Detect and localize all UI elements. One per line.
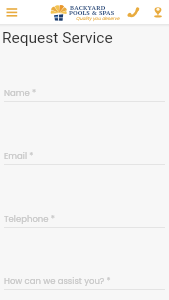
- button[interactable]: Email *: [0, 150, 169, 166]
- staticText: Quality you deserve: [76, 15, 120, 21]
- button[interactable]: Location: [147, 0, 168, 24]
- staticText: POOLS & SPAS: [69, 9, 115, 17]
- button[interactable]: Menu: [0, 0, 24, 24]
- button[interactable]: Name *: [0, 87, 169, 103]
- staticText: Name *: [4, 87, 37, 99]
- staticText: BACKYARD: [70, 4, 106, 12]
- button[interactable]: How can we assist you? *: [0, 275, 169, 291]
- button[interactable]: Call: [123, 0, 144, 24]
- staticText: Email *: [4, 150, 34, 162]
- staticText: How can we assist you? *: [4, 275, 111, 287]
- button[interactable]: Telephone *: [0, 213, 169, 229]
- staticText: Telephone *: [4, 213, 55, 225]
- staticText: Request Service: [2, 29, 113, 47]
